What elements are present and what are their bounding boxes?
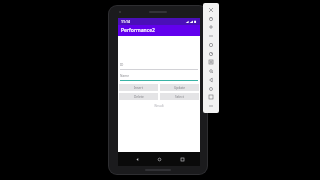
- staticText: Performance2: [121, 27, 155, 34]
- button[interactable]: Volume down: [207, 32, 215, 40]
- button[interactable]: ID: [120, 63, 198, 70]
- button[interactable]: Volume up: [207, 23, 215, 31]
- button[interactable]: Rotate left: [207, 41, 215, 49]
- button[interactable]: Rotate right: [207, 50, 215, 58]
- button[interactable]: Delete: [119, 93, 158, 100]
- button[interactable]: Recents: [178, 155, 186, 163]
- button[interactable]: Performance2: [118, 25, 200, 36]
- button[interactable]: Back: [207, 76, 215, 84]
- button[interactable]: Home: [207, 85, 215, 93]
- button[interactable]: Power: [207, 15, 215, 23]
- button[interactable]: Home: [155, 155, 163, 163]
- button[interactable]: Insert: [119, 84, 158, 91]
- button[interactable]: Screenshot: [207, 58, 215, 66]
- button[interactable]: Update: [160, 84, 199, 91]
- button[interactable]: Select: [160, 93, 199, 100]
- staticText: ID: [120, 63, 124, 67]
- staticText: Select: [175, 95, 184, 99]
- staticText: Name: [120, 74, 129, 78]
- button[interactable]: Back: [133, 155, 141, 163]
- button[interactable]: Name: [120, 74, 198, 81]
- staticText: Delete: [134, 95, 144, 99]
- staticText: Insert: [134, 86, 143, 90]
- staticText: Update: [174, 86, 185, 90]
- staticText: 11:14: [121, 19, 130, 24]
- button[interactable]: Overview: [207, 93, 215, 101]
- button[interactable]: Zoom: [207, 67, 215, 75]
- button[interactable]: Close: [207, 6, 215, 14]
- staticText: Result: [154, 104, 164, 108]
- button[interactable]: More: [207, 102, 215, 110]
